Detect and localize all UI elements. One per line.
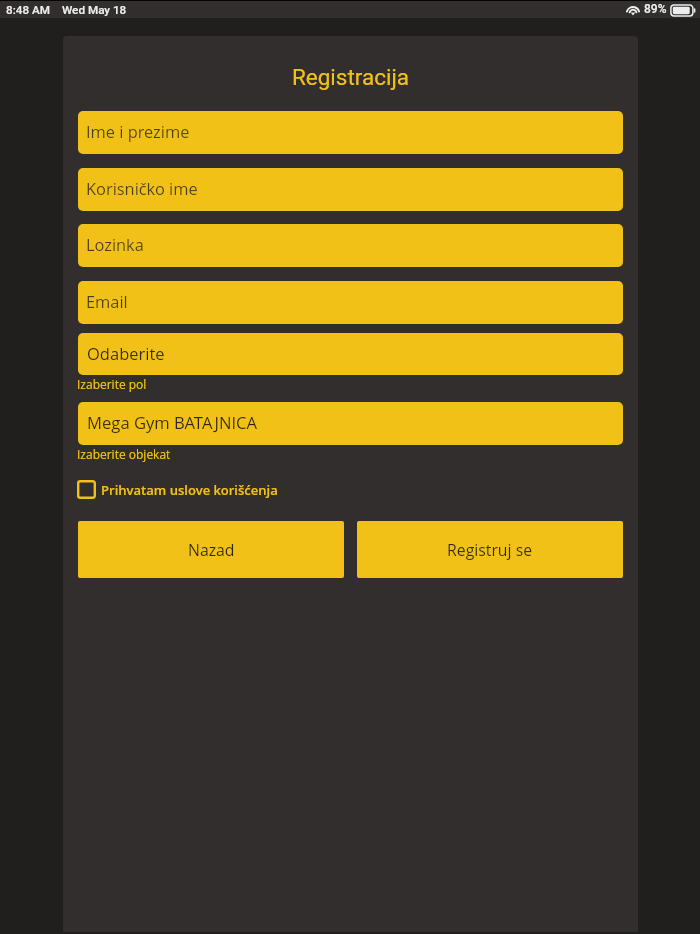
button[interactable]: Lozinka xyxy=(78,224,623,267)
staticText: Lozinka xyxy=(86,233,144,255)
staticText: Nazad xyxy=(188,539,235,561)
button[interactable]: Nazad xyxy=(78,521,344,578)
staticText: Ime i prezime xyxy=(86,120,190,142)
other: Battery 89 percent xyxy=(670,4,696,16)
staticText: Registruj se xyxy=(447,539,533,561)
other: Wi-Fi xyxy=(626,4,640,16)
staticText: Izaberite objekat xyxy=(77,446,171,462)
staticText: Prihvatam uslove korišćenja xyxy=(101,481,278,499)
button[interactable]: Prihvatam uslove korišćenja xyxy=(77,480,278,499)
button[interactable]: Odaberite xyxy=(78,333,623,375)
button[interactable]: Registruj se xyxy=(357,521,623,578)
button[interactable]: Mega Gym BATAJNICA xyxy=(78,402,623,445)
staticText: Registracija xyxy=(63,64,638,90)
staticText: Mega Gym BATAJNICA xyxy=(87,411,258,434)
button[interactable]: Korisničko ime xyxy=(78,168,623,211)
staticText: Odaberite xyxy=(87,342,165,364)
button[interactable]: Ime i prezime xyxy=(78,111,623,154)
staticText: Korisničko ime xyxy=(86,177,198,199)
staticText: 8:48 AM xyxy=(6,3,50,17)
button[interactable]: Email xyxy=(78,281,623,324)
staticText: 89% xyxy=(644,2,667,16)
staticText: Wed May 18 xyxy=(62,3,127,17)
staticText: Izaberite pol xyxy=(77,376,147,392)
staticText: Email xyxy=(86,290,128,312)
